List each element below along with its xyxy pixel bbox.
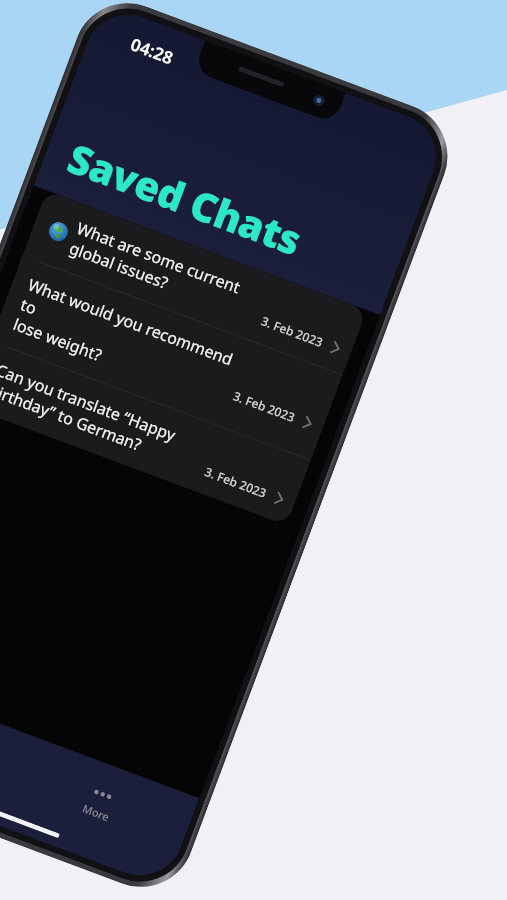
button[interactable]: Can you translate “Happy birthday” to Ge… [0, 341, 311, 525]
button[interactable]: What would you recommend to lose weight? [0, 256, 342, 460]
staticText: 3. Feb 2023 [259, 312, 326, 350]
staticText: Can you translate “Happy birthday” to Ge… [0, 359, 211, 478]
staticText: 3. Feb 2023 [203, 463, 269, 501]
staticText: More [80, 800, 112, 824]
button[interactable]: More [5, 743, 196, 855]
button[interactable]: What are some current global issues? [22, 190, 367, 375]
staticText: What are some current global issues? [66, 217, 268, 327]
staticText: 04:28 [127, 32, 177, 69]
staticText: 3. Feb 2023 [231, 387, 298, 425]
staticText: Saved Chats [61, 130, 309, 266]
button[interactable]: Chats [0, 678, 23, 791]
staticText: What would you recommend to lose weight? [10, 274, 243, 412]
